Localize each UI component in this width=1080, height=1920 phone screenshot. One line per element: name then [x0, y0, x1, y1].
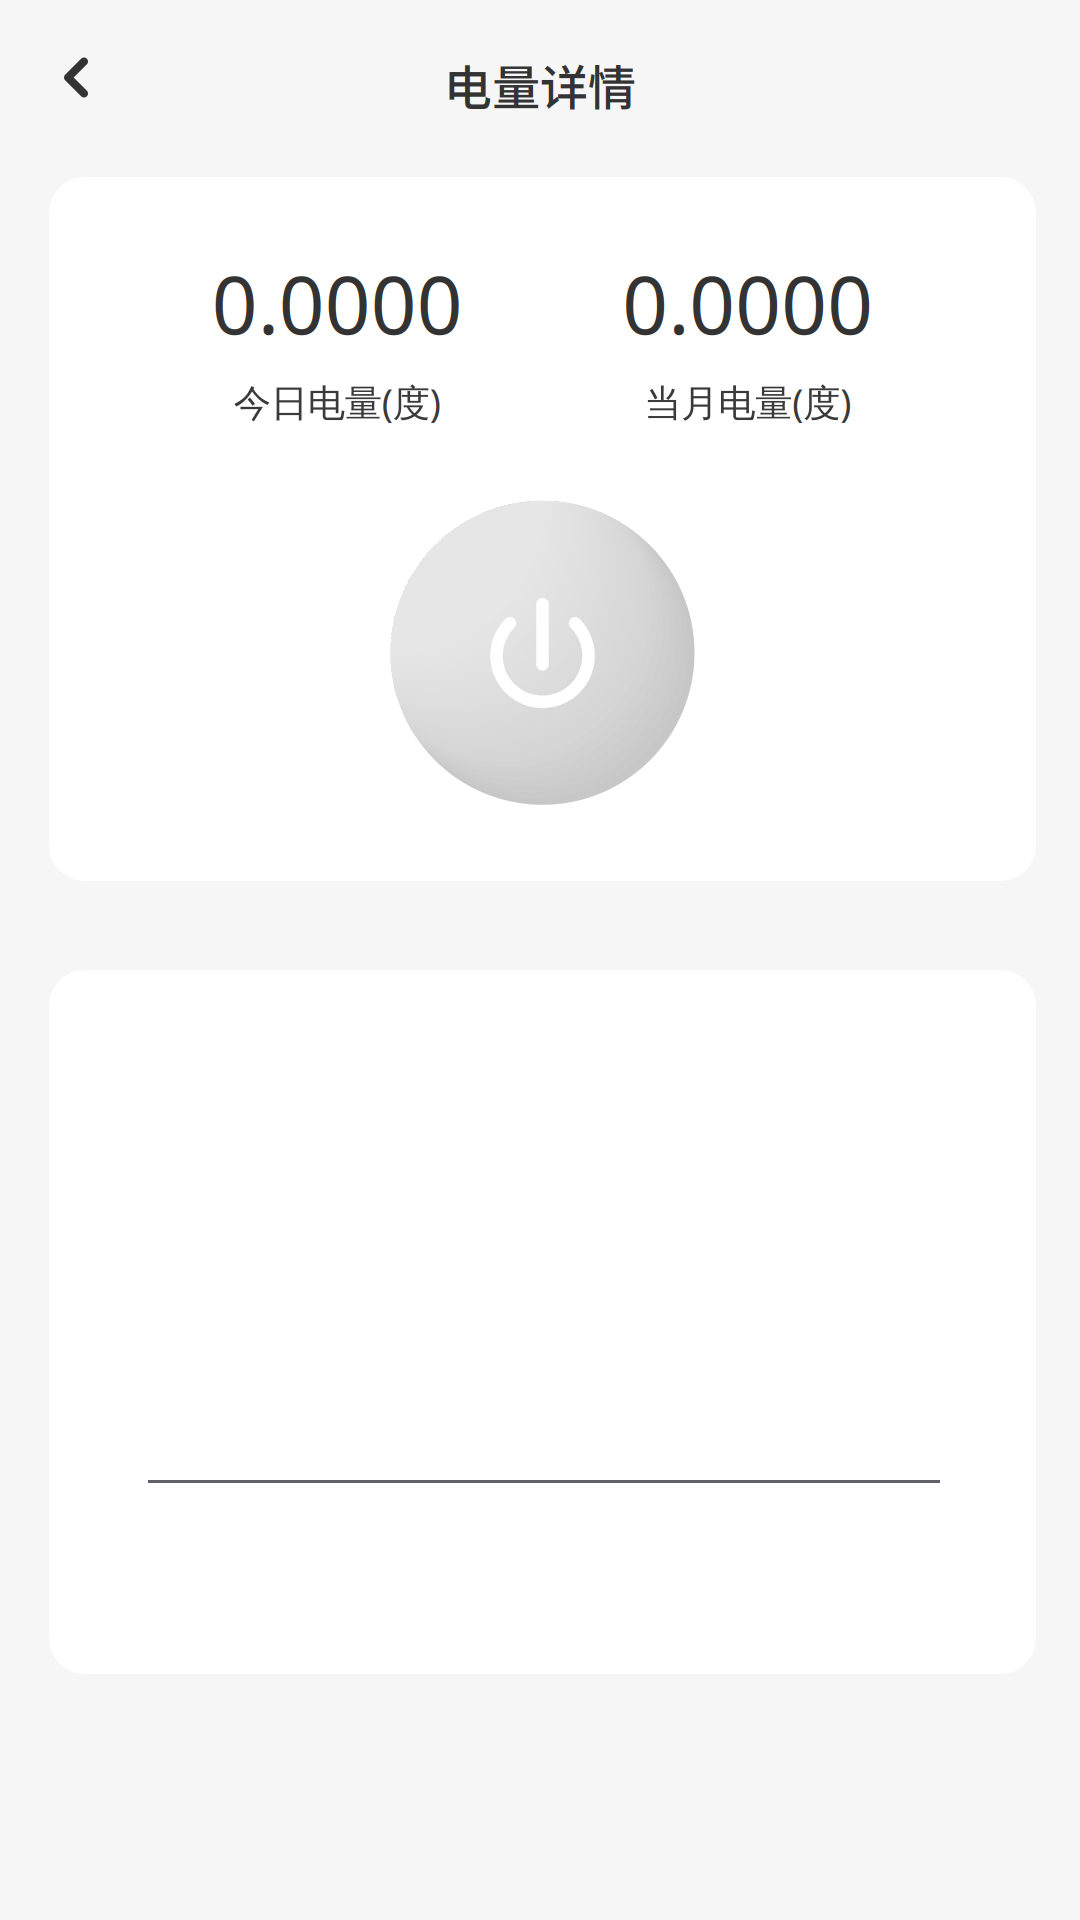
staticText: 今日电量(度)	[234, 377, 441, 427]
staticText: 当月电量(度)	[644, 377, 851, 427]
button[interactable]: Back	[0, 25, 128, 151]
staticText: 0.0000	[622, 250, 873, 356]
button[interactable]: Power toggle	[390, 501, 694, 805]
staticText: 电量详情	[444, 50, 636, 119]
staticText: 0.0000	[212, 250, 463, 356]
